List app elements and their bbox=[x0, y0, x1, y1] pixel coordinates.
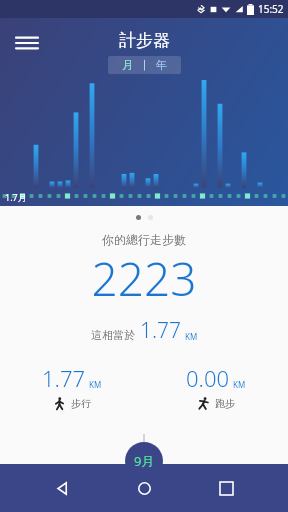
staticText: 15:52 bbox=[258, 2, 284, 16]
staticText: 步行 bbox=[71, 397, 91, 410]
staticText: 1.77 bbox=[140, 316, 182, 345]
staticText: 0.00 bbox=[186, 363, 230, 393]
button[interactable]: Recents bbox=[206, 468, 246, 508]
button[interactable]: 9月 bbox=[125, 442, 163, 480]
button[interactable]: 月 bbox=[108, 56, 181, 74]
staticText: 跑步 bbox=[215, 397, 235, 410]
button[interactable] bbox=[148, 215, 153, 220]
staticText: 這相當於 bbox=[91, 328, 135, 342]
staticText: KM bbox=[185, 331, 198, 342]
button[interactable] bbox=[136, 215, 141, 220]
staticText: 1.77 bbox=[42, 363, 86, 393]
button[interactable]: 1.77 bbox=[0, 363, 144, 410]
staticText: 2223 bbox=[0, 247, 288, 310]
staticText: 1.7月 bbox=[5, 191, 27, 203]
staticText: KM bbox=[89, 379, 102, 390]
staticText: 年 bbox=[156, 58, 167, 72]
button[interactable]: 0.00 bbox=[144, 363, 288, 410]
staticText: 9月 bbox=[134, 452, 155, 470]
staticText: 你的總行走步數 bbox=[0, 232, 288, 247]
button[interactable]: Menu bbox=[10, 26, 44, 60]
button[interactable]: Back bbox=[42, 468, 82, 508]
staticText: 丨 bbox=[139, 58, 150, 72]
button[interactable]: Home bbox=[124, 468, 164, 508]
staticText: 月 bbox=[122, 58, 133, 72]
staticText: KM bbox=[233, 379, 246, 390]
staticText: 計步器 bbox=[119, 30, 170, 51]
